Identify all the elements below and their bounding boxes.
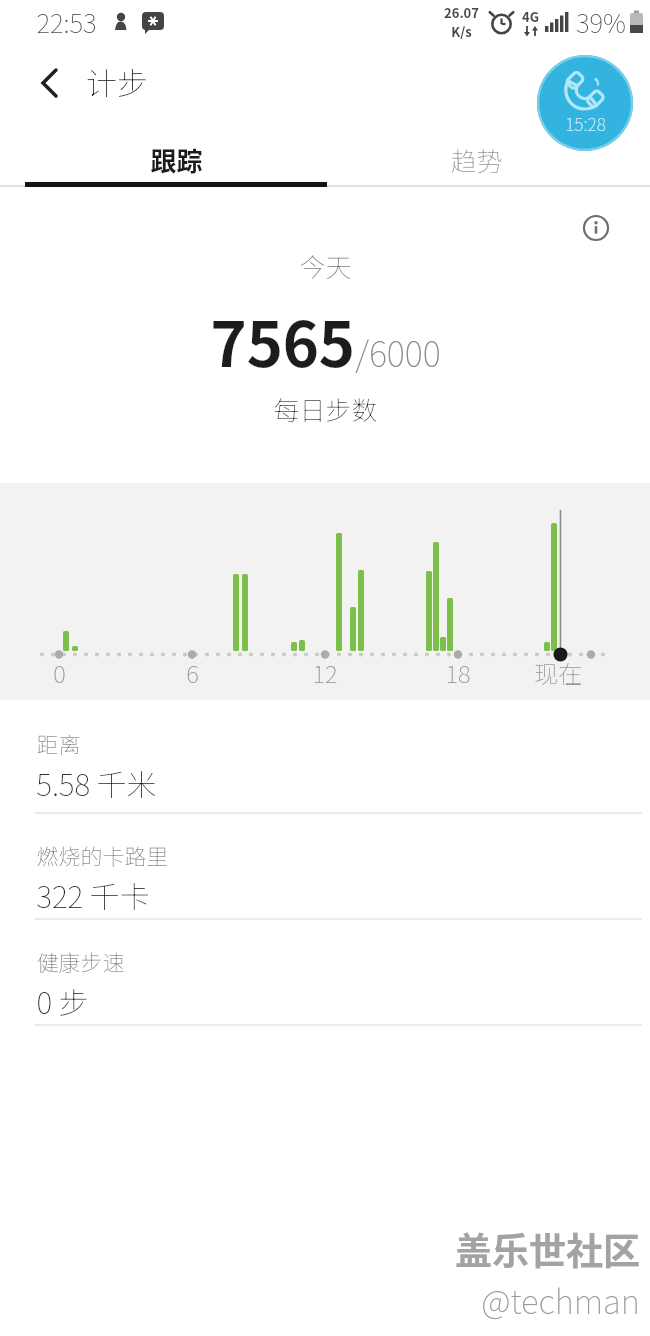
staticText: 每日步数 — [273, 390, 378, 428]
staticText: 跟踪 — [150, 141, 203, 179]
staticText: 距离 — [36, 727, 81, 759]
staticText: 盖乐世社区 — [455, 1222, 640, 1276]
button[interactable]: 跟踪 — [25, 138, 327, 182]
staticText: 趋势 — [450, 141, 503, 179]
staticText: 计步 — [86, 59, 148, 104]
button[interactable]: 燃烧的卡路里 — [0, 812, 650, 918]
staticText: 4G — [522, 7, 539, 26]
staticText: K/s — [451, 22, 472, 41]
staticText: /6000 — [355, 327, 441, 377]
staticText: 6 — [186, 655, 199, 690]
staticText: 今天 — [299, 247, 352, 285]
button[interactable]: 距离 — [0, 700, 650, 812]
staticText: 0 — [53, 655, 66, 690]
staticText: 燃烧的卡路里 — [36, 839, 169, 871]
button[interactable]: 健康步速 — [0, 918, 650, 1024]
staticText: 322 千卡 — [36, 873, 150, 916]
staticText: 15:28 — [565, 111, 606, 136]
button[interactable]: 趋势 — [327, 138, 625, 182]
button[interactable] — [38, 68, 64, 98]
staticText: 18 — [445, 655, 471, 690]
staticText: 12 — [312, 655, 338, 690]
button[interactable]: 15:28 — [536, 54, 634, 152]
staticText: 26.07 — [444, 3, 479, 22]
staticText: 健康步速 — [36, 945, 125, 977]
staticText: @techman — [481, 1276, 640, 1324]
staticText: 现在 — [534, 655, 582, 690]
staticText: 22:53 — [36, 3, 97, 41]
staticText: 39% — [576, 3, 626, 41]
staticText: 7565 — [210, 295, 355, 385]
staticText: 0 步 — [36, 979, 89, 1022]
button[interactable] — [582, 214, 610, 242]
staticText: 5.58 千米 — [36, 761, 157, 804]
